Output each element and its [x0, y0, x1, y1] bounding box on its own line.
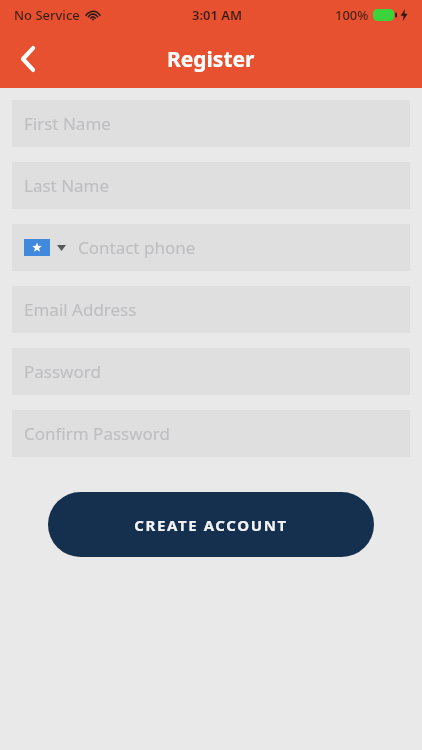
staticText: Register	[167, 45, 255, 74]
button[interactable]: Last Name	[12, 162, 410, 209]
staticText: Confirm Password	[24, 422, 170, 445]
staticText: Email Address	[24, 298, 137, 321]
button[interactable]: Email Address	[12, 286, 410, 333]
staticText: 100%	[335, 6, 369, 24]
staticText: CREATE ACCOUNT	[134, 515, 288, 535]
button[interactable]: CREATE ACCOUNT	[48, 492, 374, 557]
staticText: Last Name	[24, 174, 110, 197]
staticText: Contact phone	[78, 236, 196, 259]
staticText: First Name	[24, 112, 111, 135]
button[interactable]: Back	[6, 37, 50, 81]
staticText: Password	[24, 360, 101, 383]
button[interactable]: First Name	[12, 100, 410, 147]
button[interactable]: Contact phone	[12, 224, 410, 271]
button[interactable]: Confirm Password	[12, 410, 410, 457]
staticText: No Service	[14, 6, 80, 24]
button[interactable]: Password	[12, 348, 410, 395]
staticText: 3:01 AM	[192, 6, 243, 24]
